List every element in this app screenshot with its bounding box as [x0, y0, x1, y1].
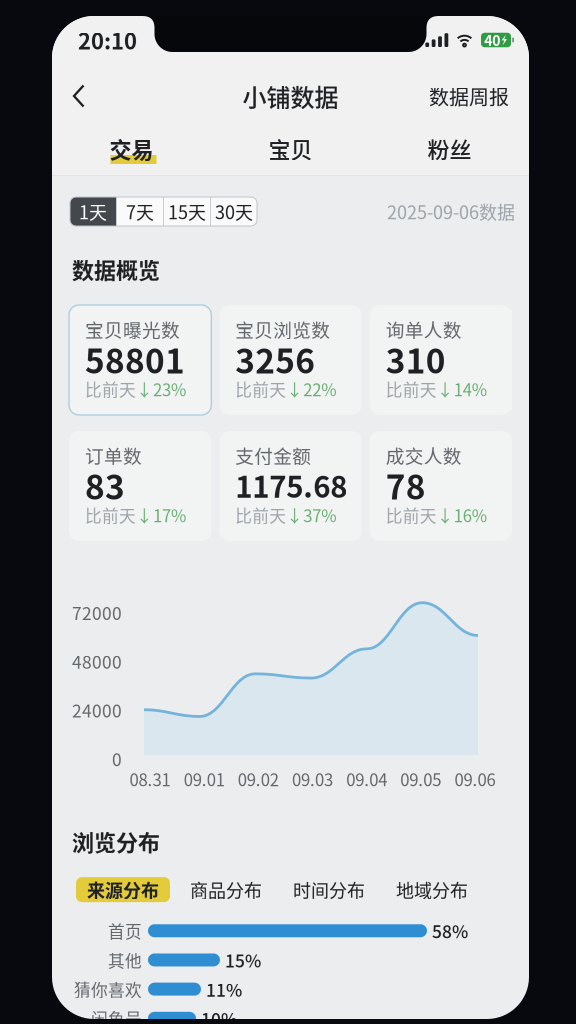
button[interactable]: 支付金额	[219, 431, 362, 541]
staticText: 宝贝曝光数	[85, 315, 180, 342]
button[interactable]: 交易	[52, 126, 211, 171]
button[interactable]: 15天	[164, 197, 210, 226]
button[interactable]: 宝贝曝光数	[69, 305, 211, 415]
staticText: 48000	[72, 649, 122, 674]
staticText: 15%	[225, 947, 261, 972]
button[interactable]: 来源分布	[76, 877, 170, 902]
button[interactable]: 订单数	[69, 431, 211, 541]
button[interactable]: Back	[59, 69, 99, 123]
button[interactable]: 1天	[70, 197, 116, 226]
staticText: 09.01	[184, 767, 225, 791]
staticText: 09.05	[400, 767, 441, 791]
staticText: 7天	[126, 198, 154, 225]
staticText: 比前天	[386, 377, 437, 401]
staticText: 78	[386, 461, 426, 509]
staticText: 宝贝浏览数	[235, 315, 330, 342]
button[interactable]: 宝贝浏览数	[219, 305, 362, 415]
staticText: 地域分布	[396, 877, 468, 903]
staticText: 09.03	[292, 767, 333, 791]
staticText: 72000	[72, 600, 122, 625]
staticText: 10%	[201, 1006, 237, 1024]
staticText: 数据概览	[72, 253, 160, 285]
button[interactable]: 地域分布	[385, 877, 479, 902]
staticText: 比前天	[235, 503, 286, 527]
staticText: 310	[386, 335, 446, 383]
button[interactable]: 询单人数	[370, 305, 512, 415]
staticText: 交易	[109, 133, 153, 164]
staticText: 3256	[235, 335, 315, 383]
staticText: ↓37%	[286, 503, 336, 527]
button[interactable]: 宝贝	[211, 126, 370, 171]
staticText: 比前天	[235, 377, 286, 401]
staticText: 来源分布	[87, 877, 159, 903]
staticText: 猜你喜欢	[74, 977, 142, 1001]
staticText: 30天	[215, 198, 253, 225]
staticText: 1175.68	[235, 464, 347, 506]
staticText: 支付金额	[235, 441, 311, 468]
staticText: 15天	[168, 198, 206, 225]
staticText: 浏览分布	[72, 825, 160, 857]
staticText: 粉丝	[427, 133, 471, 164]
staticText: 83	[85, 461, 125, 509]
staticText: 其他	[108, 948, 142, 972]
staticText: 闲鱼号	[91, 1006, 142, 1024]
staticText: ↓23%	[136, 377, 186, 401]
staticText: 20:10	[78, 24, 137, 56]
staticText: 订单数	[85, 441, 142, 468]
staticText: ↓17%	[136, 503, 186, 527]
button[interactable]: 7天	[117, 197, 163, 226]
staticText: ↓16%	[437, 503, 487, 527]
staticText: 比前天	[85, 503, 136, 527]
staticText: 40	[484, 30, 500, 50]
staticText: 成交人数	[386, 441, 462, 468]
staticText: 比前天	[386, 503, 437, 527]
button[interactable]: 30天	[211, 197, 257, 226]
staticText: 09.04	[346, 767, 387, 791]
staticText: ↓22%	[286, 377, 336, 401]
staticText: 2025-09-06数据	[387, 198, 515, 225]
button[interactable]: 时间分布	[282, 877, 376, 902]
staticText: 1天	[79, 198, 107, 225]
staticText: 询单人数	[386, 315, 462, 342]
staticText: 11%	[206, 977, 242, 1002]
staticText: 数据周报	[429, 81, 509, 110]
staticText: 比前天	[85, 377, 136, 401]
staticText: 0	[112, 746, 122, 771]
staticText: 宝贝	[268, 133, 312, 164]
button[interactable]: 数据周报	[421, 69, 517, 123]
staticText: 商品分布	[190, 877, 262, 903]
staticText: 小铺数据	[242, 79, 338, 113]
staticText: 24000	[72, 697, 122, 722]
button[interactable]: 粉丝	[370, 126, 529, 171]
staticText: ↓14%	[437, 377, 487, 401]
staticText: 首页	[108, 919, 142, 943]
staticText: 58%	[432, 918, 468, 943]
button[interactable]: 成交人数	[370, 431, 512, 541]
button[interactable]: 商品分布	[179, 877, 273, 902]
staticText: 09.06	[454, 767, 495, 791]
staticText: 08.31	[130, 767, 171, 791]
staticText: 时间分布	[293, 877, 365, 903]
staticText: 58801	[85, 335, 185, 383]
staticText: 09.02	[238, 767, 279, 791]
